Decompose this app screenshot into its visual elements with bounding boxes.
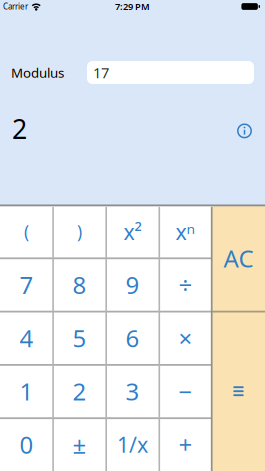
- button[interactable]: −: [159, 365, 212, 418]
- staticText: ÷: [178, 269, 192, 301]
- staticText: 1/x: [117, 430, 148, 458]
- staticText: 1: [19, 375, 33, 407]
- staticText: 5: [72, 322, 86, 354]
- staticText: 6: [125, 322, 139, 354]
- button[interactable]: Info: [237, 119, 252, 138]
- staticText: Carrier: [3, 1, 28, 12]
- staticText: 9: [125, 269, 139, 301]
- button[interactable]: 0: [0, 418, 53, 471]
- button[interactable]: 1/x: [106, 418, 159, 471]
- button[interactable]: +: [159, 418, 212, 471]
- button[interactable]: AC: [212, 205, 265, 311]
- button[interactable]: 7: [0, 258, 53, 311]
- button[interactable]: 2: [53, 365, 106, 418]
- button[interactable]: 8: [53, 258, 106, 311]
- staticText: x²: [123, 217, 141, 246]
- staticText: 0: [19, 428, 33, 460]
- button[interactable]: 5: [53, 311, 106, 365]
- staticText: 17: [93, 63, 109, 82]
- button[interactable]: xⁿ: [159, 205, 212, 258]
- staticText: 4: [19, 322, 33, 354]
- button[interactable]: Modulus: [87, 61, 254, 84]
- button[interactable]: (: [0, 205, 53, 258]
- staticText: 2: [12, 111, 27, 146]
- staticText: ±: [72, 428, 86, 460]
- button[interactable]: 9: [106, 258, 159, 311]
- button[interactable]: ÷: [159, 258, 212, 311]
- button[interactable]: ): [53, 205, 106, 258]
- button[interactable]: x²: [106, 205, 159, 258]
- staticText: 3: [125, 375, 139, 407]
- staticText: −: [178, 375, 192, 407]
- button[interactable]: Equals: [212, 311, 265, 471]
- button[interactable]: ×: [159, 311, 212, 365]
- button[interactable]: 4: [0, 311, 53, 365]
- staticText: ×: [178, 322, 192, 354]
- staticText: +: [178, 428, 192, 460]
- staticText: 8: [72, 269, 86, 301]
- staticText: 7: [19, 269, 33, 301]
- staticText: Modulus: [11, 64, 64, 81]
- staticText: ): [77, 220, 82, 243]
- staticText: 2: [72, 375, 86, 407]
- staticText: xⁿ: [175, 217, 195, 246]
- staticText: AC: [223, 242, 253, 274]
- button[interactable]: 1: [0, 365, 53, 418]
- button[interactable]: 6: [106, 311, 159, 365]
- staticText: (: [24, 220, 29, 243]
- staticText: 7:29 PM: [115, 0, 150, 13]
- button[interactable]: 3: [106, 365, 159, 418]
- button[interactable]: ±: [53, 418, 106, 471]
